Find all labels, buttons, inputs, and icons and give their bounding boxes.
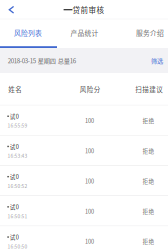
button[interactable]: 返回 — [0, 0, 23, 19]
button[interactable]: 产品统计 — [56, 19, 113, 46]
staticText: 扫描建议 — [135, 84, 163, 94]
staticText: 试0 — [10, 142, 19, 150]
staticText: 姓名 — [8, 84, 22, 94]
button[interactable]: 试0 — [0, 196, 168, 226]
staticText: 试0 — [10, 112, 19, 120]
staticText: 拒绝 — [142, 177, 154, 185]
staticText: 100 — [85, 147, 94, 155]
staticText: 筛选 — [151, 56, 163, 65]
staticText: 16:55:59 — [7, 122, 27, 129]
staticText: 拒绝 — [142, 116, 154, 125]
staticText: 服务介绍 — [136, 28, 164, 38]
staticText: 产品统计 — [70, 28, 98, 38]
staticText: 拒绝 — [142, 147, 154, 155]
staticText: 贷前审核 — [72, 4, 104, 15]
staticText: 拒绝 — [142, 237, 154, 245]
staticText: 风险分 — [80, 84, 101, 94]
staticText: 2018-03-15 星期四 总量16 — [8, 56, 76, 65]
button[interactable]: 筛选 — [151, 56, 163, 65]
button[interactable]: 试0 — [0, 105, 168, 136]
staticText: 试0 — [10, 173, 19, 181]
button[interactable]: 风险列表 — [0, 19, 56, 46]
staticText: 试0 — [10, 203, 19, 211]
staticText: 16:53:43 — [7, 152, 27, 159]
staticText: 100 — [85, 207, 94, 215]
staticText: 100 — [85, 237, 94, 245]
staticText: 16:50:51 — [7, 212, 27, 220]
staticText: 100 — [85, 177, 94, 185]
staticText: 16:50:50 — [7, 243, 27, 249]
button[interactable]: 试0 — [0, 226, 168, 249]
staticText: 试0 — [10, 233, 19, 241]
button[interactable]: 服务介绍 — [113, 19, 168, 46]
staticText: 100 — [85, 116, 94, 125]
staticText: 16:50:52 — [7, 182, 27, 189]
staticText: 风险列表 — [14, 28, 42, 38]
staticText: 拒绝 — [142, 207, 154, 215]
button[interactable]: 试0 — [0, 166, 168, 196]
button[interactable]: 试0 — [0, 136, 168, 166]
